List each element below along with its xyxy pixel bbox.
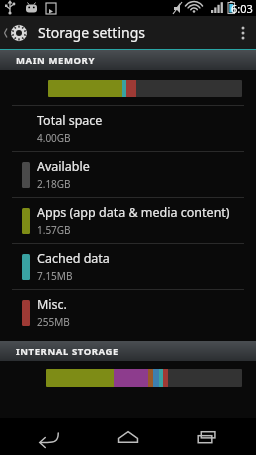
- button[interactable]: Total space: [0, 106, 256, 151]
- button[interactable]: More options: [230, 16, 256, 49]
- staticText: 7.15MB: [37, 269, 73, 283]
- button[interactable]: Apps (app data & media content): [0, 198, 256, 243]
- staticText: Available: [37, 158, 90, 175]
- staticText: 6:03: [231, 1, 253, 16]
- staticText: Apps (app data & media content): [37, 204, 230, 221]
- button[interactable]: Cached data: [0, 244, 256, 289]
- staticText: 2.18GB: [37, 177, 71, 191]
- button[interactable]: Back: [19, 418, 79, 455]
- staticText: INTERNAL STORAGE: [16, 345, 119, 358]
- staticText: 4.00GB: [37, 131, 71, 145]
- button[interactable]: Available: [0, 152, 256, 197]
- button[interactable]: Home: [98, 418, 158, 455]
- button[interactable]: Navigate up: [0, 16, 36, 49]
- staticText: Storage settings: [38, 23, 230, 42]
- staticText: 1.57GB: [37, 223, 71, 237]
- button[interactable]: Misc.: [0, 290, 256, 335]
- staticText: 255MB: [37, 315, 70, 329]
- staticText: Misc.: [37, 296, 67, 313]
- staticText: Cached data: [37, 250, 110, 267]
- button[interactable]: Recent apps: [177, 418, 237, 455]
- staticText: MAIN MEMORY: [16, 54, 95, 67]
- staticText: Total space: [37, 112, 103, 129]
